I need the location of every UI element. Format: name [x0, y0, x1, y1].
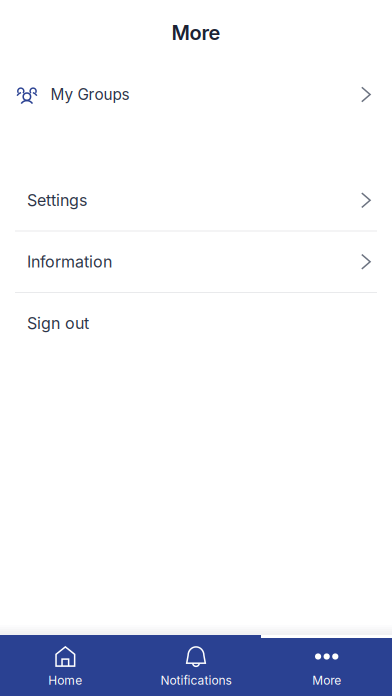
- button[interactable]: Home: [0, 635, 131, 696]
- button[interactable]: Information: [0, 231, 392, 292]
- staticText: Notifications: [160, 673, 231, 687]
- staticText: Home: [48, 673, 82, 687]
- staticText: More: [312, 673, 341, 687]
- button[interactable]: Settings: [0, 170, 392, 230]
- staticText: Sign out: [27, 314, 89, 333]
- button[interactable]: Notifications: [131, 635, 261, 696]
- staticText: More: [171, 20, 220, 45]
- button[interactable]: My Groups: [0, 64, 392, 125]
- button[interactable]: More: [261, 635, 392, 696]
- button[interactable]: Sign out: [0, 293, 392, 353]
- staticText: Information: [27, 252, 112, 271]
- staticText: Settings: [27, 191, 87, 210]
- staticText: My Groups: [50, 85, 129, 104]
